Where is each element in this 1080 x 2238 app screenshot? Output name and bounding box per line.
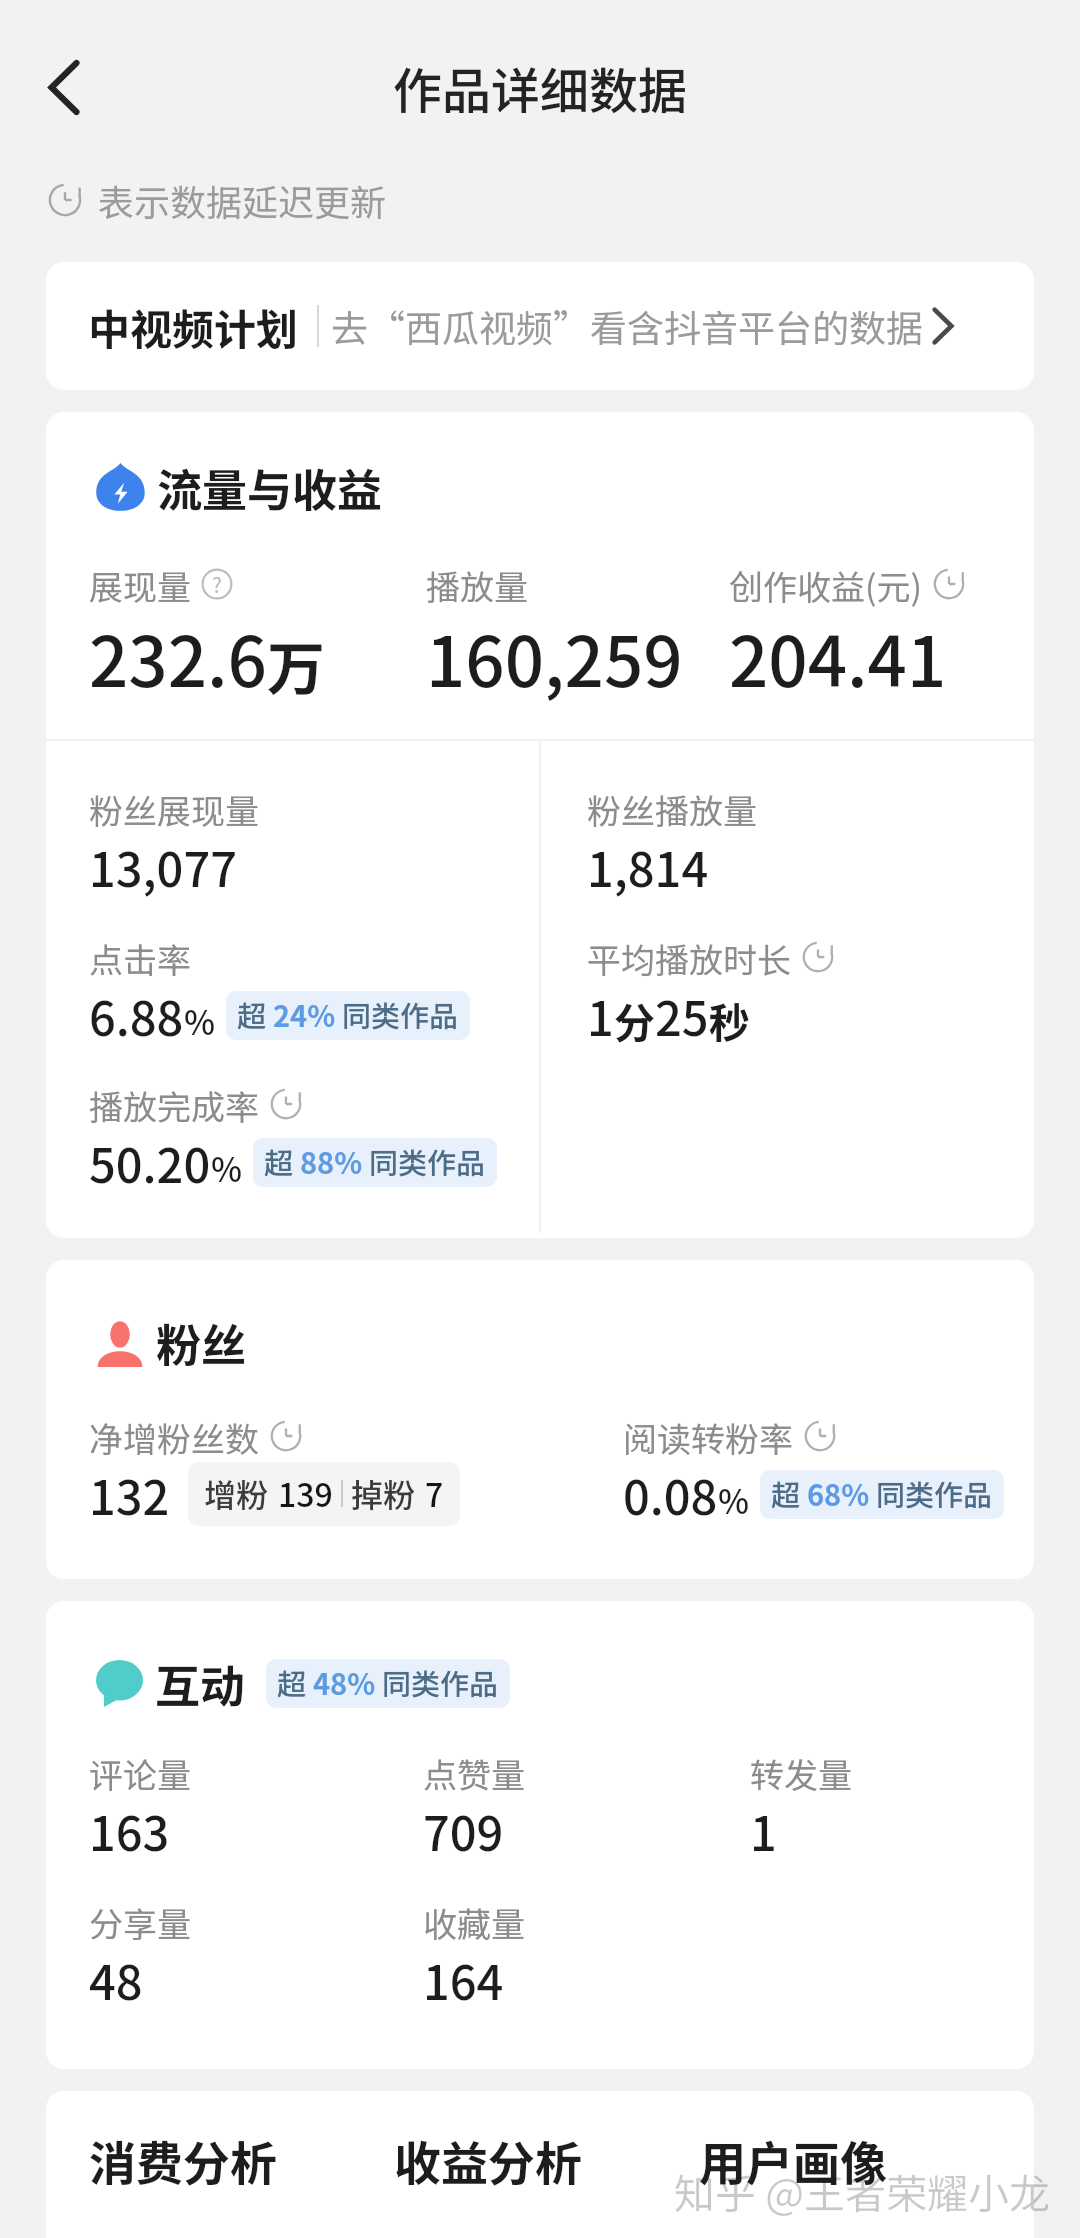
staticText: 表示数据延迟更新	[98, 174, 387, 226]
staticText: 超	[237, 993, 267, 1035]
staticText: 同类作品	[876, 1472, 993, 1514]
staticText: 作品详细数据	[393, 52, 688, 123]
staticText: 1,814	[587, 832, 709, 900]
staticText: 分享量	[89, 1898, 191, 1944]
staticText: 88%	[300, 1140, 363, 1182]
staticText: 播放量	[426, 561, 528, 607]
staticText: 6.88	[89, 981, 184, 1049]
staticText: %	[718, 1476, 749, 1524]
staticText: 709	[423, 1796, 504, 1864]
staticText: 204.41	[729, 607, 947, 707]
staticText: 阅读转粉率	[623, 1413, 793, 1459]
staticText: 同类作品	[369, 1140, 486, 1182]
staticText: 用户画像	[699, 2126, 887, 2194]
button[interactable]: 超	[760, 1470, 1004, 1519]
button[interactable]: 超	[266, 1659, 510, 1708]
staticText: 增粉	[204, 1470, 269, 1516]
staticText: 232.6	[89, 607, 267, 707]
staticText: 中视频计划	[88, 296, 299, 357]
button[interactable]: 收益分析	[394, 2126, 699, 2194]
button[interactable]: 消费分析	[89, 2126, 394, 2194]
staticText: 13,077	[89, 832, 237, 900]
staticText: 粉丝展现量	[89, 785, 259, 831]
button[interactable]: 用户画像	[699, 2126, 887, 2194]
staticText: 流量与收益	[157, 455, 383, 520]
staticText: 超	[264, 1140, 294, 1182]
staticText: 点击率	[89, 934, 191, 980]
button[interactable]: 中视频计划	[46, 262, 1034, 390]
staticText: %	[211, 1144, 242, 1192]
staticText: 同类作品	[382, 1661, 499, 1703]
staticText: 0.08	[623, 1460, 718, 1528]
staticText: 去“西瓜视频”看含抖音平台的数据	[331, 299, 923, 353]
staticText: 万	[267, 623, 326, 707]
staticText: 粉丝	[156, 1310, 247, 1375]
staticText: 48%	[313, 1661, 376, 1703]
staticText: 收益分析	[394, 2126, 582, 2194]
button[interactable]: 超	[226, 991, 470, 1040]
staticText: 展现量	[89, 561, 191, 607]
staticText: 1	[750, 1796, 777, 1864]
staticText: %	[184, 997, 215, 1045]
staticText: 164	[423, 1945, 504, 2013]
button[interactable]: 超	[253, 1138, 497, 1187]
staticText: 同类作品	[342, 993, 459, 1035]
staticText: 创作收益(元)	[729, 561, 922, 607]
staticText: 播放完成率	[89, 1081, 259, 1127]
button[interactable]: Back	[20, 43, 108, 131]
staticText: 160,259	[426, 607, 683, 707]
staticText: 掉粉	[351, 1470, 416, 1516]
staticText: 收藏量	[423, 1898, 525, 1944]
staticText: 132	[89, 1460, 170, 1528]
staticText: 知乎 @王者荣耀小龙	[674, 2161, 1050, 2220]
staticText: 分	[614, 990, 655, 1049]
staticText: ?	[212, 569, 222, 599]
staticText: 秒	[709, 990, 750, 1049]
staticText: 25	[655, 981, 709, 1049]
staticText: 转发量	[750, 1749, 852, 1795]
button[interactable]: 增粉	[188, 1462, 460, 1526]
staticText: 139	[278, 1470, 333, 1516]
staticText: 超	[277, 1661, 307, 1703]
staticText: 7	[425, 1470, 444, 1516]
staticText: 消费分析	[89, 2126, 277, 2194]
staticText: 1	[587, 981, 614, 1049]
staticText: 点赞量	[423, 1749, 525, 1795]
staticText: 互动	[155, 1651, 246, 1716]
staticText: 163	[89, 1796, 170, 1864]
staticText: 平均播放时长	[587, 934, 791, 980]
staticText: 粉丝播放量	[587, 785, 757, 831]
staticText: 50.20	[89, 1128, 211, 1196]
staticText: 评论量	[89, 1749, 191, 1795]
staticText: 68%	[807, 1472, 870, 1514]
staticText: 净增粉丝数	[89, 1413, 259, 1459]
staticText: 24%	[273, 993, 336, 1035]
staticText: 48	[89, 1945, 143, 2013]
staticText: 超	[771, 1472, 801, 1514]
